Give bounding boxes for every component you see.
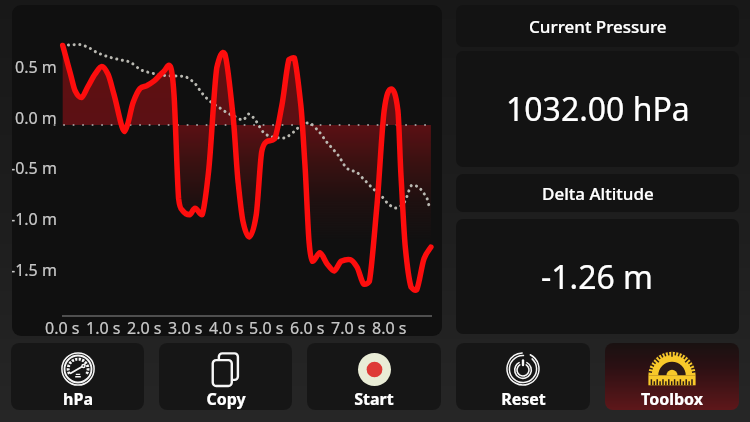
staticText: Delta Altitude	[542, 182, 654, 205]
other: Reset	[506, 352, 540, 386]
staticText: 5.0 s	[249, 317, 284, 339]
staticText: 1032.00 hPa	[506, 87, 690, 131]
staticText: -0.5 m	[12, 157, 57, 179]
other: Copy	[209, 352, 243, 386]
button[interactable]: Pressure units hPa	[11, 343, 144, 410]
other: Start recording	[358, 353, 391, 386]
button[interactable]: Reset	[456, 343, 590, 410]
staticText: -1.5 m	[12, 259, 57, 281]
staticText: 7.0 s	[331, 317, 366, 339]
staticText: 6.0 s	[290, 317, 325, 339]
staticText: Start	[354, 388, 394, 410]
button[interactable]: Toolbox	[605, 343, 739, 410]
staticText: Current Pressure	[529, 15, 667, 38]
button[interactable]: Current Pressure	[456, 5, 739, 47]
staticText: 2.0 s	[127, 317, 162, 339]
button[interactable]: Delta Altitude	[456, 174, 739, 212]
staticText: -1.26 m	[541, 255, 654, 299]
other: Toolbox	[654, 351, 690, 387]
button[interactable]: Start recording	[307, 343, 441, 410]
button[interactable]: -1.26 m	[456, 219, 739, 334]
staticText: 3.0 s	[168, 317, 203, 339]
staticText: Copy	[206, 388, 246, 410]
staticText: 8.0 s	[372, 317, 407, 339]
staticText: Toolbox	[641, 388, 703, 410]
staticText: hPa	[63, 388, 93, 410]
staticText: 0.5 m	[15, 56, 57, 78]
staticText: Reset	[501, 388, 546, 410]
other: Pressure units hPa	[61, 352, 95, 386]
staticText: 0.0 s	[45, 317, 80, 339]
staticText: 0.0 m	[15, 107, 57, 129]
button[interactable]: 1032.00 hPa	[456, 51, 739, 167]
button[interactable]: Copy	[159, 343, 292, 410]
staticText: 1.0 s	[86, 317, 121, 339]
staticText: 4.0 s	[209, 317, 244, 339]
staticText: -1.0 m	[12, 208, 57, 230]
